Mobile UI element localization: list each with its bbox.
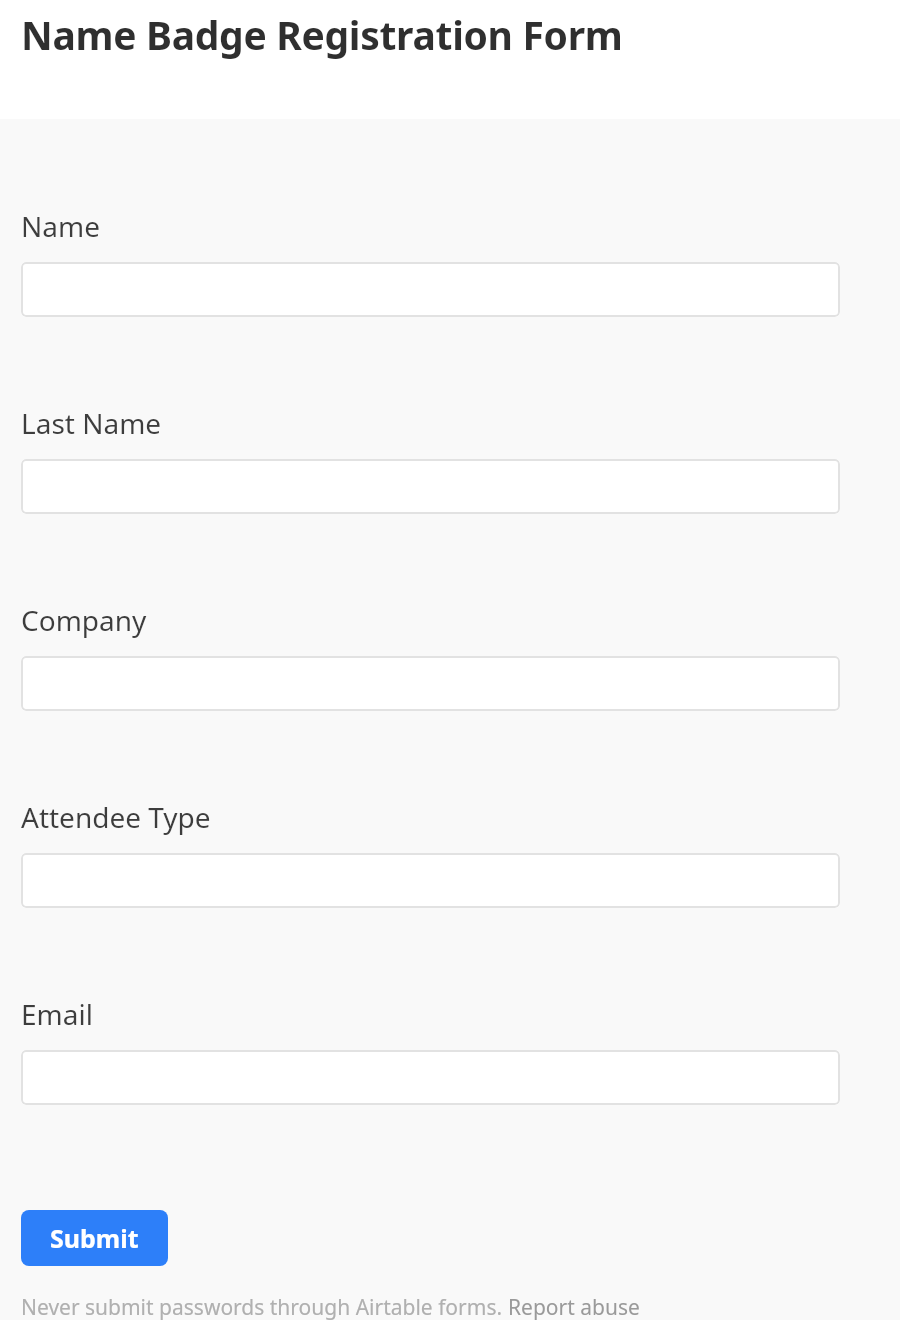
staticText: Name (21, 207, 100, 245)
staticText: Submit (50, 1221, 139, 1255)
button[interactable] (21, 1050, 840, 1105)
staticText: Report abuse (508, 1293, 640, 1320)
staticText: Name Badge Registration Form (21, 8, 623, 61)
button[interactable] (21, 262, 840, 317)
staticText: Never submit passwords through Airtable … (21, 1293, 508, 1320)
staticText: Email (21, 995, 93, 1033)
button[interactable]: Report abuse (508, 1293, 640, 1320)
staticText: Company (21, 601, 147, 639)
button[interactable] (21, 656, 840, 711)
button[interactable] (21, 853, 840, 908)
button[interactable] (21, 459, 840, 514)
staticText: Attendee Type (21, 798, 211, 836)
staticText: Last Name (21, 404, 162, 442)
button[interactable]: Submit (21, 1210, 168, 1266)
